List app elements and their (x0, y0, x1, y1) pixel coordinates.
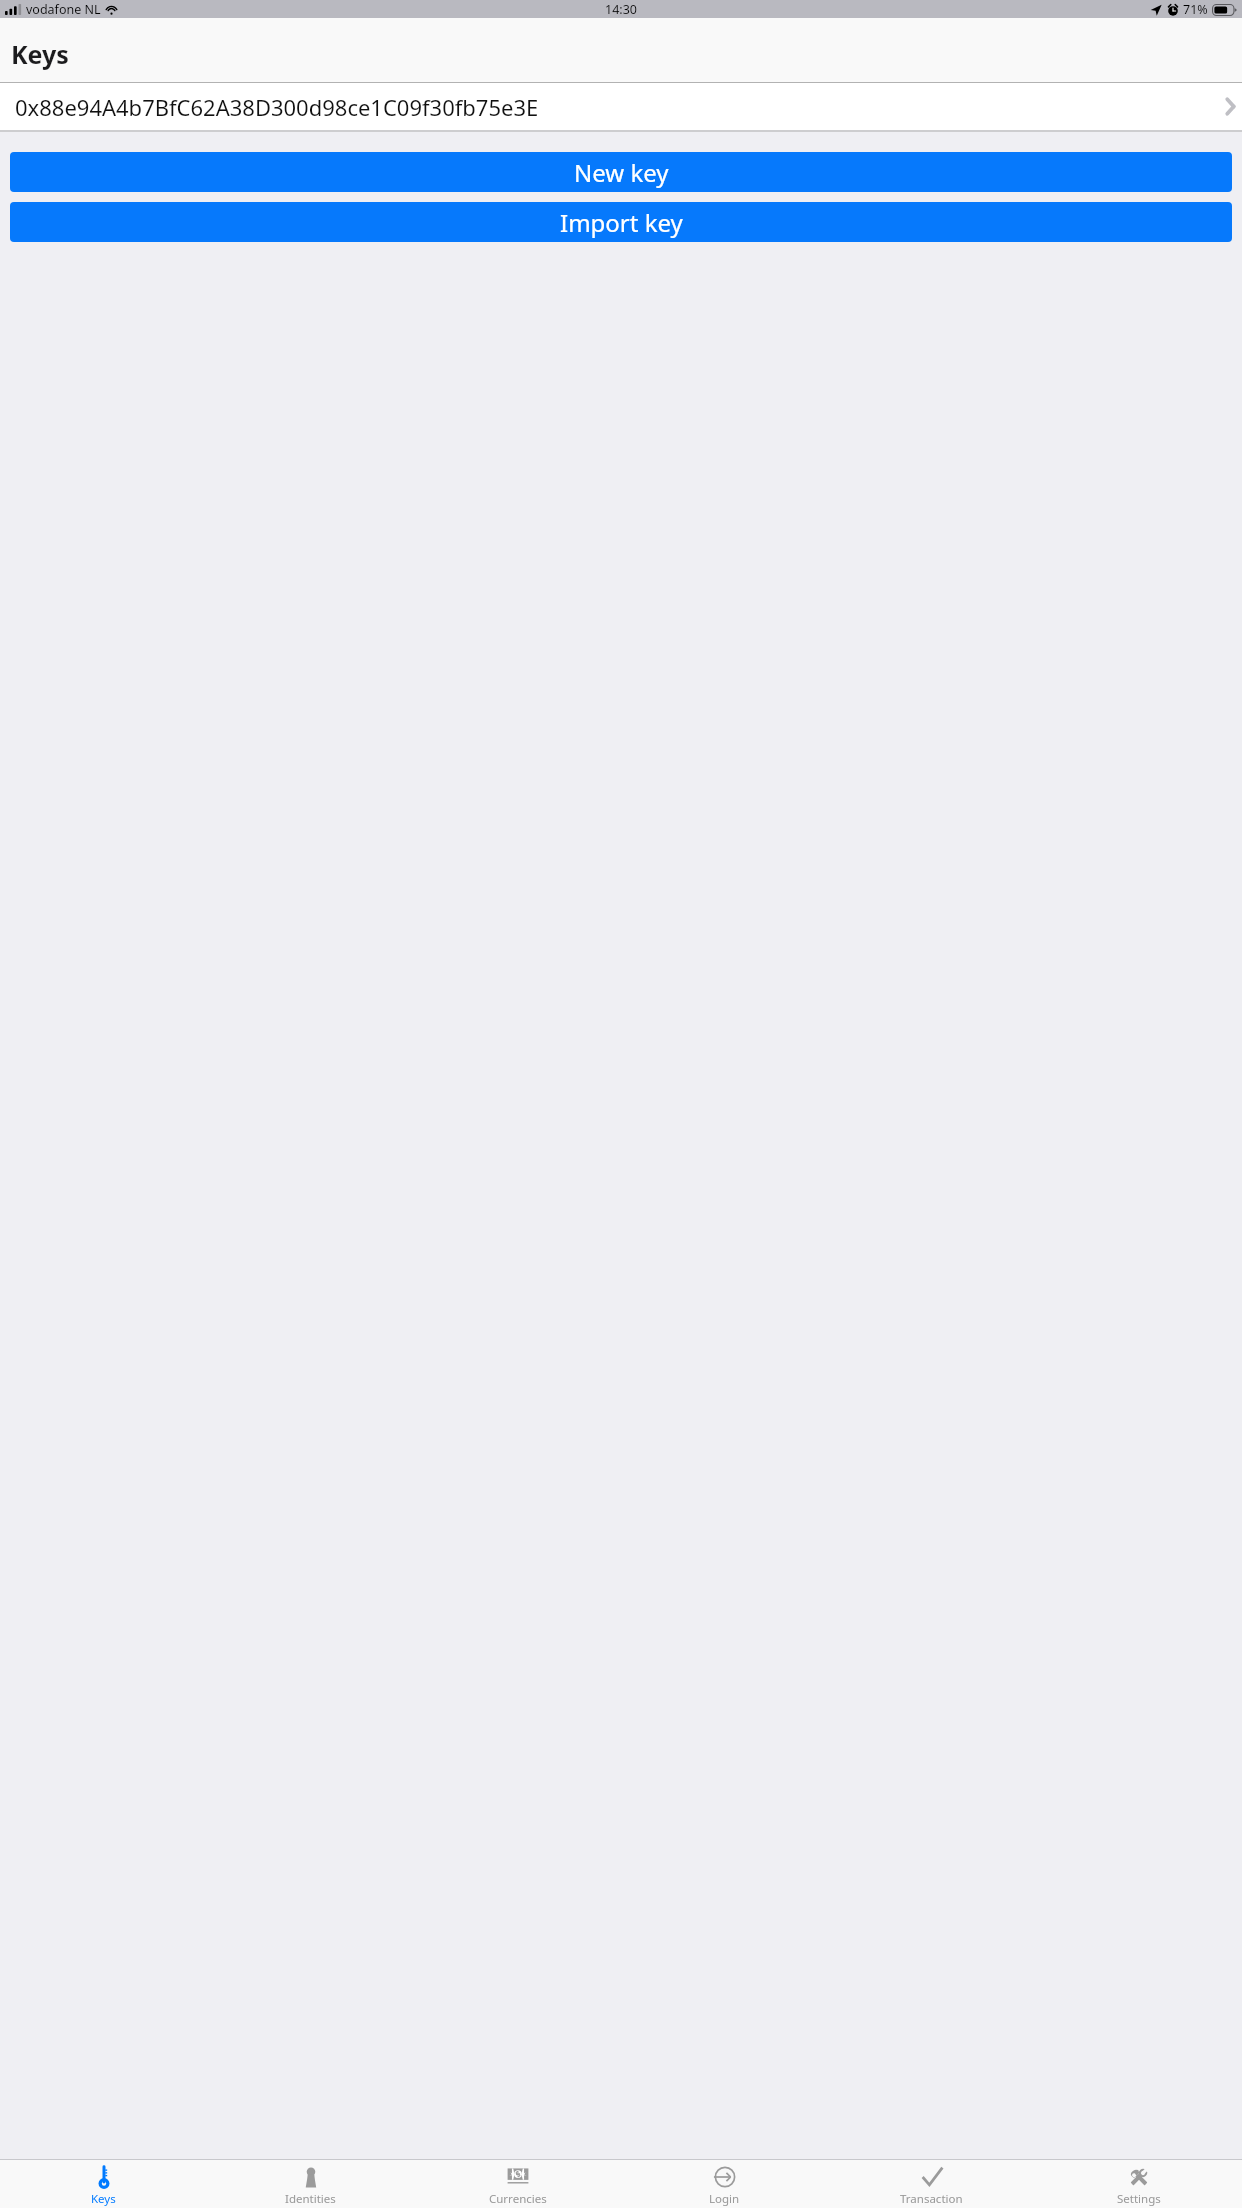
staticText: Keys (91, 2191, 116, 2207)
staticText: Login (709, 2191, 740, 2207)
staticText: Transaction (900, 2191, 963, 2207)
staticText: Keys (11, 37, 69, 71)
staticText: 0x88e94A4b7BfC62A38D300d98ce1C09f30fb75e… (15, 92, 539, 122)
button[interactable]: 0x88e94A4b7BfC62A38D300d98ce1C09f30fb75e… (0, 83, 1242, 130)
button[interactable]: New key (10, 152, 1232, 192)
button[interactable]: Import key (10, 202, 1232, 242)
staticText: Settings (1117, 2191, 1161, 2207)
button[interactable]: Transaction (828, 2162, 1035, 2207)
staticText: vodafone NL (26, 1, 101, 18)
staticText: New key (574, 156, 669, 189)
staticText: Import key (560, 206, 683, 239)
button[interactable]: Login (621, 2162, 828, 2207)
button[interactable]: Keys (0, 2162, 207, 2207)
staticText: Currencies (489, 2191, 547, 2207)
button[interactable]: Currencies (414, 2162, 621, 2207)
staticText: 71% (1183, 1, 1208, 18)
button[interactable]: Identities (207, 2162, 414, 2207)
button[interactable]: Settings (1035, 2162, 1242, 2207)
staticText: 14:30 (605, 1, 637, 18)
staticText: Identities (285, 2191, 336, 2207)
